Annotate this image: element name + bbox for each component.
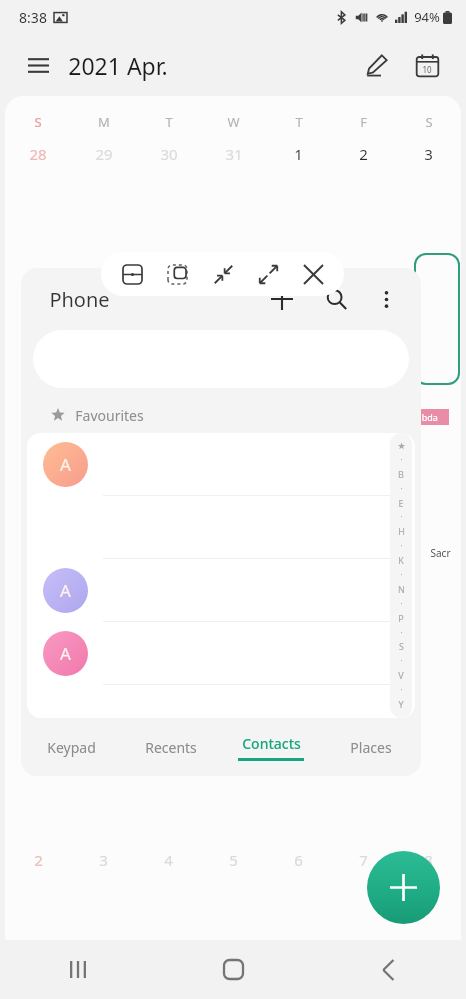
button[interactable]: Keypad [21,718,121,776]
staticText: Contacts [242,734,301,753]
staticText: 2021 Apr. [68,50,168,81]
staticText: 2 [359,144,368,164]
staticText: Phone [49,286,110,313]
staticText: S [425,113,433,131]
staticText: · [400,598,403,609]
staticText: W [227,113,240,131]
button[interactable]: Pop-up view [158,255,196,293]
staticText: 3 [424,144,433,164]
staticText: s bda [415,411,438,423]
staticText: 1 [294,144,303,164]
staticText: 30 [160,144,178,164]
staticText: H [398,525,405,537]
button[interactable]: Recent apps [0,940,156,999]
staticText: T [295,113,303,131]
button[interactable]: A [27,559,415,621]
button[interactable]: Alphabet index [390,433,412,718]
staticText: 5 [229,850,238,870]
button[interactable]: Back [311,940,466,999]
staticText: S [34,113,42,131]
staticText: 94% [414,8,440,26]
staticText: Y [398,698,404,710]
staticText: 8 [424,850,433,870]
staticText: Favourites [75,406,144,425]
button[interactable]: Today [406,44,448,86]
button[interactable]: Search [315,278,357,320]
staticText: A [60,642,71,665]
staticText: S [399,640,404,652]
staticText: 28 [29,144,47,164]
staticText: · [400,454,403,465]
staticText: P [398,612,404,624]
staticText: T [165,113,173,131]
staticText: · [400,684,403,695]
staticText: · [400,483,403,494]
staticText: 4 [164,850,173,870]
staticText: · [400,627,403,638]
staticText: ★ [397,441,406,451]
button[interactable]: Maximize window [249,255,287,293]
staticText: 8:38 [19,8,47,27]
button[interactable]: Close window [294,255,332,293]
staticText: 6 [294,850,303,870]
button[interactable]: Recents [121,718,221,776]
button[interactable]: Add contact [261,278,303,320]
staticText: N [398,583,405,595]
button[interactable]: Edit [356,44,398,86]
button[interactable]: A [27,622,415,684]
staticText: 7 [359,850,368,870]
staticText: · [400,540,403,551]
staticText: 10 [422,64,432,75]
staticText: · [400,569,403,580]
staticText: B [398,468,404,480]
button[interactable]: Minimize window [204,255,242,293]
button[interactable]: Menu [20,47,56,83]
staticText: K [398,554,404,566]
staticText: · [400,655,403,666]
button[interactable]: Places [321,718,421,776]
button[interactable]: A [27,433,415,495]
staticText: E [398,497,404,509]
staticText: Recents [145,738,197,757]
staticText: Places [350,738,392,757]
button[interactable]: Split screen view [113,255,151,293]
button[interactable]: Contacts [221,718,321,776]
staticText: A [60,453,71,476]
staticText: V [398,669,404,681]
staticText: · [400,511,403,522]
staticText: Sacr [430,546,451,560]
button[interactable]: Add event [367,851,440,924]
staticText: Keypad [47,738,96,757]
button[interactable]: Home [156,940,311,999]
staticText: F [360,113,367,131]
staticText: M [98,113,110,131]
staticText: 3 [99,850,108,870]
button[interactable]: More options [365,278,407,320]
button[interactable] [27,496,415,558]
staticText: 31 [225,144,243,164]
staticText: 2 [34,850,43,870]
staticText: A [60,579,71,602]
staticText: 29 [95,144,113,164]
